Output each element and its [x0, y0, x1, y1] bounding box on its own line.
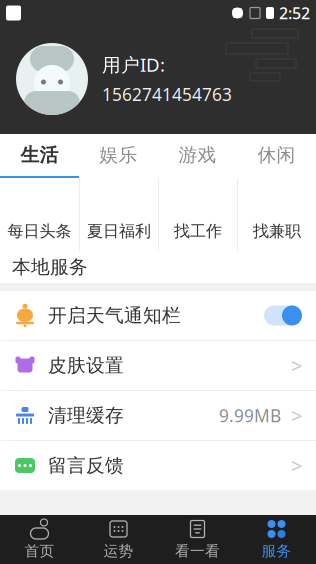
staticText: 用户ID:	[102, 52, 165, 77]
staticText: 找工作	[174, 221, 222, 241]
button[interactable]: 看一看	[158, 515, 237, 564]
button[interactable]: 休闲	[237, 134, 316, 176]
button[interactable]: 皮肤设置	[0, 341, 316, 390]
button[interactable]: 服务	[237, 515, 316, 564]
staticText: >	[291, 402, 302, 429]
staticText: >	[291, 452, 302, 479]
staticText: 休闲	[257, 143, 295, 166]
staticText: >	[291, 352, 302, 379]
staticText: 开启天气通知栏	[48, 304, 181, 327]
staticText: 1562741454763	[102, 83, 232, 106]
button[interactable]: 运势	[79, 515, 158, 564]
staticText: 清理缓存	[48, 404, 124, 427]
button[interactable]: 清理缓存	[0, 391, 316, 440]
button[interactable]: 找工作	[158, 178, 237, 251]
staticText: 运势	[103, 542, 133, 560]
staticText: 9.99MB	[219, 404, 281, 427]
button[interactable]: 首页	[0, 515, 79, 564]
button[interactable]: 娱乐	[79, 134, 158, 176]
button[interactable]: 游戏	[158, 134, 237, 176]
staticText: 每日头条	[7, 221, 71, 241]
staticText: 首页	[24, 542, 54, 560]
button[interactable]: 夏日福利	[79, 178, 158, 251]
button[interactable]: 留言反馈	[0, 441, 316, 490]
staticText: 服务	[261, 542, 291, 560]
staticText: 留言反馈	[48, 454, 124, 477]
staticText: 夏日福利	[87, 221, 151, 241]
staticText: 找兼职	[253, 221, 301, 241]
staticText: 皮肤设置	[48, 354, 124, 377]
staticText: 娱乐	[99, 143, 137, 166]
staticText: 生活	[20, 143, 58, 166]
staticText: 2:52	[279, 2, 310, 24]
button[interactable]: 找兼职	[237, 178, 316, 251]
staticText: 看一看	[175, 542, 220, 560]
staticText: 本地服务	[12, 255, 88, 278]
button[interactable]: 开启天气通知栏	[0, 291, 316, 340]
button[interactable]: 每日头条	[0, 178, 79, 251]
button[interactable]: 生活	[0, 134, 79, 176]
staticText: 游戏	[178, 143, 216, 166]
